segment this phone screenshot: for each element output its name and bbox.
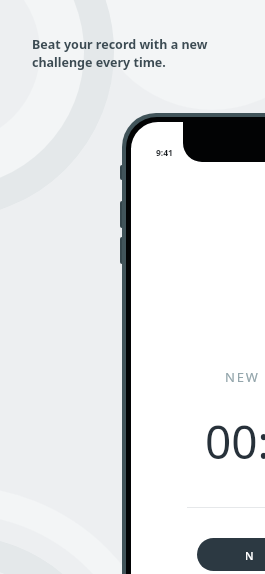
staticText: Beat your record with a new challenge ev… xyxy=(32,36,230,71)
staticText: 00: xyxy=(205,410,265,473)
staticText: 9:41 xyxy=(156,147,173,159)
staticText: NEW xyxy=(225,368,260,386)
staticText: N xyxy=(245,548,254,563)
button[interactable]: New challenge xyxy=(197,538,265,571)
